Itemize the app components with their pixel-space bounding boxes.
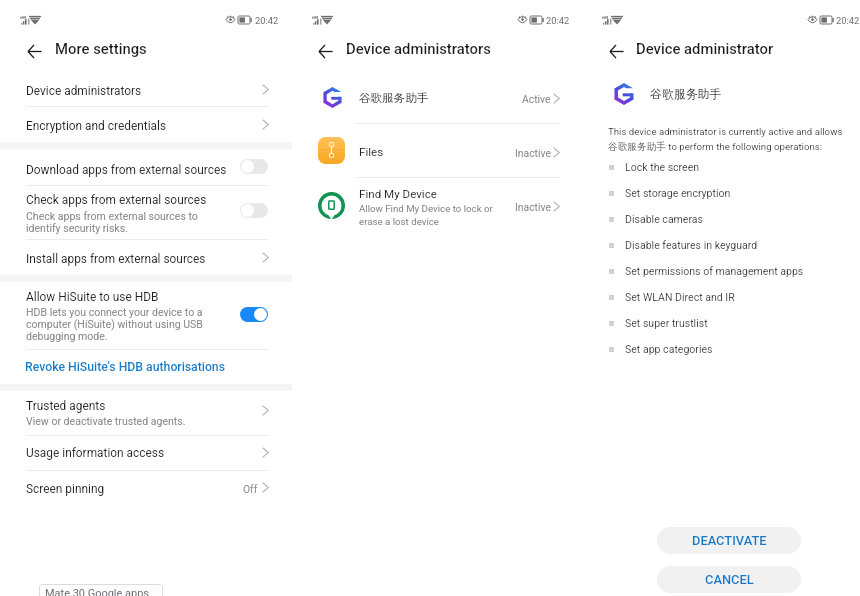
staticText: Allow HiSuite to use HDB bbox=[26, 290, 159, 304]
staticText: 谷歌服务助手 bbox=[650, 87, 722, 102]
staticText: Lock the screen bbox=[625, 161, 700, 173]
button[interactable] bbox=[0, 349, 292, 383]
staticText: Device administrators bbox=[346, 40, 491, 57]
staticText: Disable features in keyguard bbox=[625, 239, 758, 251]
staticText: Screen pinning bbox=[26, 482, 105, 496]
button[interactable]: CANCEL bbox=[657, 566, 801, 593]
button[interactable]: Back bbox=[609, 44, 624, 59]
staticText: Device administrators bbox=[26, 84, 142, 98]
button[interactable] bbox=[0, 390, 292, 434]
button[interactable] bbox=[292, 178, 582, 235]
staticText: Inactive bbox=[515, 201, 551, 213]
staticText: DEACTIVATE bbox=[692, 533, 767, 548]
staticText: Find My Device bbox=[359, 187, 437, 201]
staticText: Set storage encryption bbox=[625, 187, 731, 199]
staticText: More settings bbox=[55, 40, 147, 57]
staticText: Check apps from external sources to iden… bbox=[26, 210, 198, 234]
button[interactable] bbox=[0, 108, 292, 141]
staticText: HDB lets you connect your device to a co… bbox=[26, 306, 203, 342]
button[interactable]: Switch off bbox=[240, 159, 268, 174]
button[interactable]: Switch on bbox=[240, 307, 268, 322]
button[interactable] bbox=[0, 75, 292, 108]
button[interactable]: Switch off bbox=[240, 203, 268, 218]
staticText: CANCEL bbox=[705, 572, 754, 587]
staticText: Mate 30 Google apps bbox=[45, 587, 150, 596]
staticText: Install apps from external sources bbox=[26, 252, 206, 266]
staticText: Active bbox=[522, 93, 551, 105]
staticText: Set super trustlist bbox=[625, 317, 708, 329]
button[interactable] bbox=[0, 149, 292, 187]
staticText: Allow Find My Device to lock or erase a … bbox=[359, 203, 493, 228]
staticText: 20:42 bbox=[836, 15, 860, 26]
button[interactable]: Back bbox=[318, 44, 333, 59]
button[interactable]: Back bbox=[27, 44, 42, 59]
staticText: Set app categories bbox=[625, 343, 713, 355]
button[interactable] bbox=[292, 124, 582, 177]
staticText: Off bbox=[243, 483, 258, 495]
button[interactable] bbox=[0, 239, 292, 272]
staticText: Trusted agents bbox=[26, 399, 106, 413]
button[interactable] bbox=[0, 282, 292, 348]
button[interactable] bbox=[0, 188, 292, 238]
staticText: 谷歌服务助手 bbox=[359, 91, 429, 106]
staticText: 20:42 bbox=[255, 15, 279, 26]
button[interactable]: DEACTIVATE bbox=[657, 527, 801, 554]
staticText: Device administrator bbox=[636, 40, 774, 57]
staticText: Set permissions of management apps bbox=[625, 265, 804, 277]
staticText: Set WLAN Direct and IR bbox=[625, 291, 735, 303]
staticText: Encryption and credentials bbox=[26, 119, 167, 133]
staticText: Files bbox=[359, 145, 384, 159]
staticText: Check apps from external sources bbox=[26, 193, 207, 207]
staticText: Revoke HiSuite's HDB authorisations bbox=[25, 360, 225, 374]
staticText: Disable cameras bbox=[625, 213, 704, 225]
staticText: Usage information access bbox=[26, 446, 165, 460]
staticText: Inactive bbox=[515, 147, 551, 159]
button[interactable] bbox=[0, 435, 292, 468]
staticText: This device administrator is currently a… bbox=[608, 126, 843, 153]
staticText: View or deactivate trusted agents. bbox=[26, 415, 186, 427]
button[interactable] bbox=[0, 470, 292, 503]
staticText: Download apps from external sources bbox=[26, 163, 227, 177]
staticText: 20:42 bbox=[546, 15, 570, 26]
button[interactable] bbox=[292, 76, 582, 123]
